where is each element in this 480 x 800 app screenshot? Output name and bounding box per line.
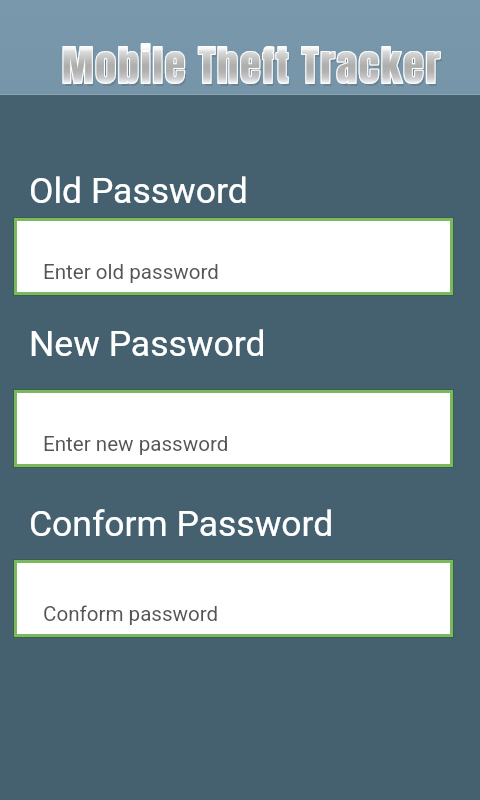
staticText: Enter new password <box>43 432 229 456</box>
staticText: Enter old password <box>43 260 219 284</box>
button[interactable]: Enter new password <box>17 393 450 464</box>
button[interactable]: Conform password <box>17 563 450 634</box>
button[interactable]: Enter old password <box>17 221 450 292</box>
staticText: Conform Password <box>29 503 334 545</box>
staticText: Mobile Theft Tracker <box>62 34 442 97</box>
staticText: Conform password <box>43 602 219 626</box>
staticText: Mobile Theft Tracker <box>64 37 444 100</box>
staticText: Mobile Theft Tracker <box>62 34 442 97</box>
staticText: Old Password <box>29 170 248 212</box>
staticText: New Password <box>29 323 266 365</box>
